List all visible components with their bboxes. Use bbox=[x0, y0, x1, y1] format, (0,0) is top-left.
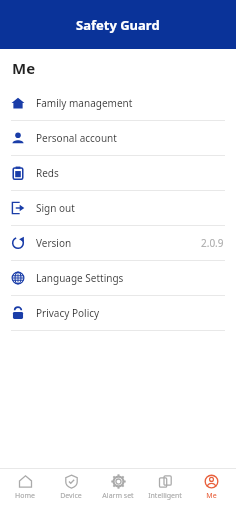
staticText: Safety Guard bbox=[76, 16, 160, 34]
staticText: Personal account bbox=[36, 131, 117, 145]
button[interactable]: Intelligent bbox=[143, 469, 187, 512]
button[interactable]: Version bbox=[0, 226, 236, 260]
staticText: Sign out bbox=[36, 201, 75, 215]
button[interactable]: Family management bbox=[0, 86, 236, 120]
button[interactable]: Reds bbox=[0, 156, 236, 190]
button[interactable]: Personal account bbox=[0, 121, 236, 155]
staticText: Version bbox=[36, 236, 72, 250]
staticText: Family management bbox=[36, 96, 133, 110]
button[interactable]: Privacy Policy bbox=[0, 296, 236, 330]
staticText: Intelligent bbox=[148, 491, 182, 501]
staticText: Alarm set bbox=[102, 491, 134, 501]
staticText: Language Settings bbox=[36, 271, 124, 285]
button[interactable]: Home bbox=[3, 469, 47, 512]
staticText: Home bbox=[15, 491, 35, 501]
button[interactable]: Language Settings bbox=[0, 261, 236, 295]
button[interactable]: Alarm set bbox=[96, 469, 140, 512]
staticText: Reds bbox=[36, 166, 59, 180]
staticText: Me bbox=[206, 491, 217, 501]
staticText: Privacy Policy bbox=[36, 306, 100, 320]
staticText: 2.0.9 bbox=[201, 236, 224, 250]
staticText: Me bbox=[12, 58, 36, 78]
button[interactable]: Me bbox=[189, 469, 233, 512]
button[interactable]: Device bbox=[49, 469, 93, 512]
button[interactable]: Sign out bbox=[0, 191, 236, 225]
staticText: Device bbox=[60, 491, 82, 501]
